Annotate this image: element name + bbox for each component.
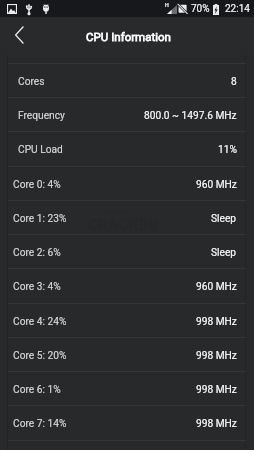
button[interactable]: Cores — [0, 65, 254, 98]
button[interactable]: Frequency — [0, 99, 254, 132]
staticText: Core 3: 4% — [13, 281, 61, 293]
button[interactable]: Back — [6, 16, 31, 54]
button[interactable]: Core 7: 14% — [0, 407, 254, 440]
staticText: 998 MHz — [196, 418, 237, 430]
button[interactable]: Core 6: 1% — [0, 373, 254, 406]
button[interactable]: Core 3: 4% — [0, 270, 254, 303]
staticText: 998 MHz — [196, 316, 237, 328]
staticText: 998 MHz — [196, 384, 237, 396]
staticText: 22:14 — [225, 3, 250, 15]
staticText: 8 — [231, 76, 237, 88]
staticText: Sleep — [211, 213, 237, 225]
staticText: 11% — [218, 144, 237, 156]
button[interactable]: Core 5: 20% — [0, 339, 254, 372]
staticText: Core 5: 20% — [13, 350, 67, 362]
staticText: Sleep — [211, 247, 237, 259]
staticText: 960 MHz — [196, 281, 237, 293]
staticText: Core 0: 4% — [13, 179, 61, 191]
staticText: Cores — [18, 76, 45, 88]
staticText: Core 1: 23% — [13, 213, 67, 225]
button[interactable]: CPU Load — [0, 133, 254, 166]
button[interactable]: Core 1: 23% — [0, 202, 254, 235]
staticText: 70% — [191, 3, 210, 15]
staticText: 800.0 ~ 1497.6 MHz — [144, 110, 237, 122]
staticText: 960 MHz — [196, 179, 237, 191]
staticText: Core 4: 24% — [13, 316, 67, 328]
staticText: H — [165, 2, 169, 8]
button[interactable]: Core 0: 4% — [0, 168, 254, 201]
staticText: Frequency — [18, 110, 65, 122]
staticText: Core 7: 14% — [13, 418, 67, 430]
staticText: CPU Information — [86, 30, 171, 43]
button[interactable]: Core 4: 24% — [0, 305, 254, 338]
button[interactable]: Core 2: 6% — [0, 236, 254, 269]
staticText: Core 2: 6% — [13, 247, 61, 259]
staticText: 998 MHz — [196, 350, 237, 362]
staticText: CPU Load — [18, 144, 63, 156]
staticText: Core 6: 1% — [13, 384, 61, 396]
